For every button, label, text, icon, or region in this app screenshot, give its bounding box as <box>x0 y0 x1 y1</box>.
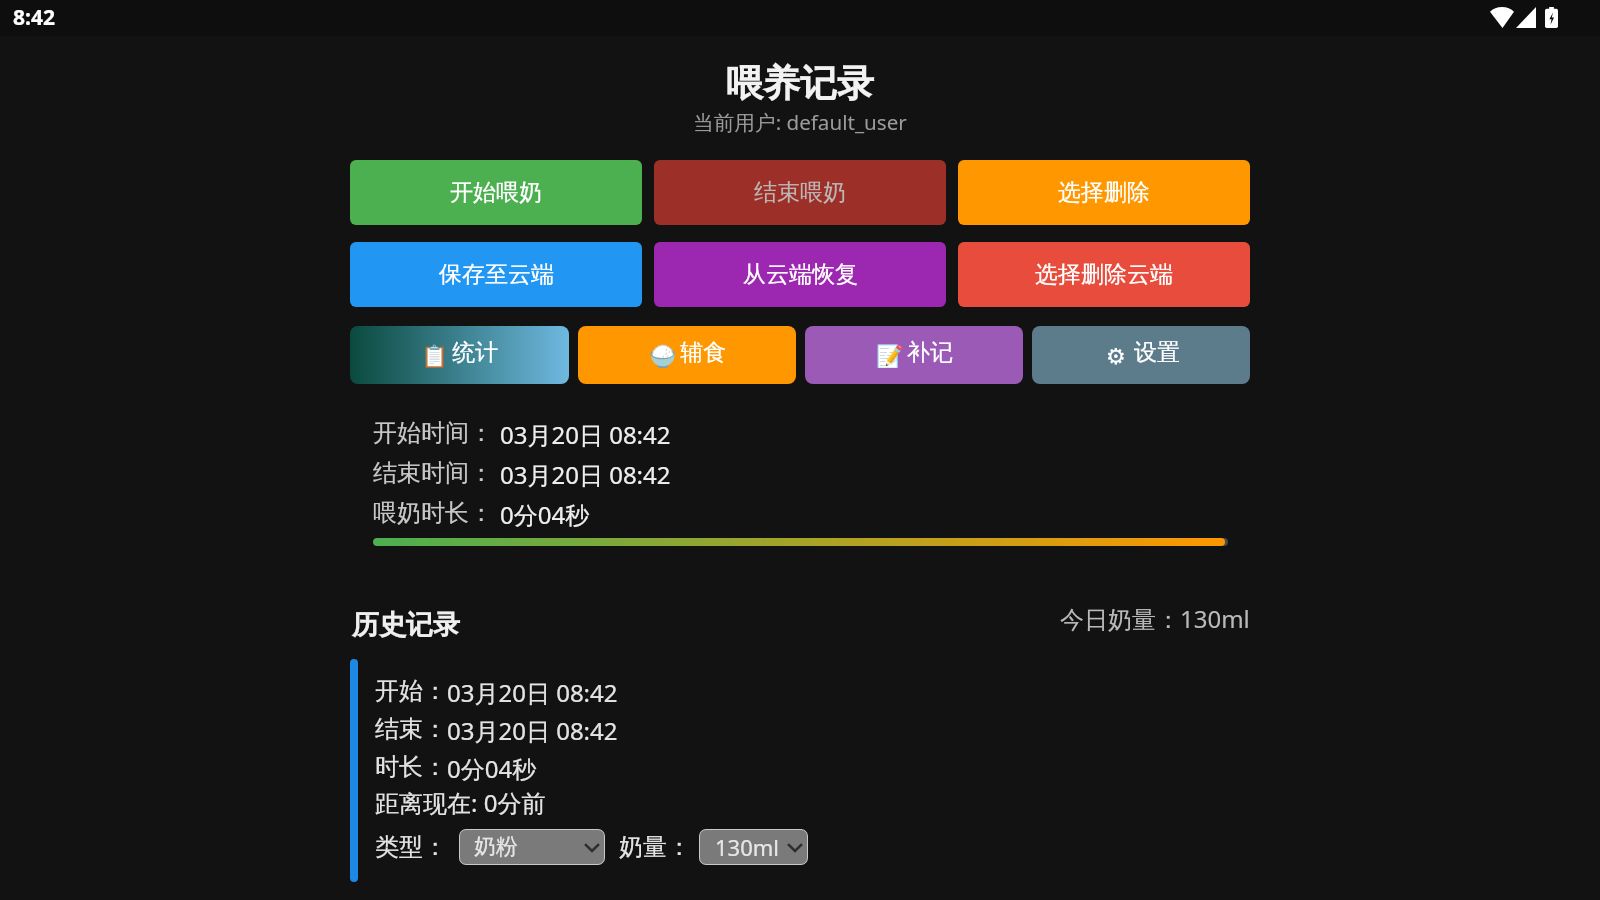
button[interactable]: 开始： <box>350 659 1250 882</box>
other: Cellular signal <box>1516 7 1536 28</box>
staticText: 时长： <box>375 752 447 782</box>
staticText: 开始喂奶 <box>450 178 542 207</box>
button[interactable]: 选择删除云端 <box>958 242 1250 307</box>
staticText: 保存至云端 <box>439 260 554 289</box>
staticText: 03月20日 08:42 <box>447 714 618 747</box>
staticText: 结束喂奶 <box>754 178 846 207</box>
staticText: 设置 <box>1134 338 1180 367</box>
staticText: 喂养记录 <box>350 60 1250 107</box>
button[interactable]: 从云端恢复 <box>654 242 946 307</box>
staticText: 结束时间： <box>373 458 493 488</box>
staticText: 📝 <box>876 344 902 368</box>
staticText: 奶量： <box>619 832 691 862</box>
staticText: 📋 <box>421 344 447 368</box>
staticText: 奶粉 <box>474 833 518 861</box>
staticText: 🍚 <box>649 344 675 368</box>
other: Battery charging <box>1545 7 1558 28</box>
staticText: 03月20日 08:42 <box>447 676 618 709</box>
button[interactable]: 📝 <box>805 326 1023 384</box>
staticText: 统计 <box>452 338 498 367</box>
staticText: 选择删除云端 <box>1035 260 1173 289</box>
button[interactable]: 📋 <box>350 326 569 384</box>
staticText: 130ml <box>715 832 779 862</box>
staticText: 历史记录 <box>352 608 460 642</box>
staticText: 开始： <box>375 676 447 706</box>
staticText: ⚙ <box>1106 344 1126 368</box>
staticText: 今日奶量：130ml <box>1060 602 1250 635</box>
staticText: 结束： <box>375 714 447 744</box>
staticText: 从云端恢复 <box>743 260 858 289</box>
other: Wi-Fi signal <box>1490 7 1514 28</box>
button[interactable]: 选择类型：奶粉 <box>459 829 605 865</box>
staticText: 03月20日 08:42 <box>500 418 671 451</box>
staticText: 0分04秒 <box>447 752 537 785</box>
staticText: 0分04秒 <box>500 498 590 531</box>
button[interactable]: 选择删除 <box>958 160 1250 225</box>
staticText: 喂奶时长： <box>373 498 493 528</box>
staticText: 辅食 <box>680 338 726 367</box>
staticText: 补记 <box>907 338 953 367</box>
button[interactable]: 保存至云端 <box>350 242 642 307</box>
staticText: 类型： <box>375 832 447 862</box>
button[interactable]: 开始喂奶 <box>350 160 642 225</box>
staticText: 当前用户: default_user <box>350 108 1250 136</box>
button[interactable]: 选择奶量：130ml <box>699 829 808 865</box>
staticText: 选择删除 <box>1058 178 1150 207</box>
button[interactable]: 🍚 <box>578 326 796 384</box>
staticText: 03月20日 08:42 <box>500 458 671 491</box>
staticText: 开始时间： <box>373 418 493 448</box>
button[interactable]: ⚙ <box>1032 326 1250 384</box>
staticText: 距离现在: 0分前 <box>375 786 546 819</box>
button[interactable]: 结束喂奶 <box>654 160 946 225</box>
staticText: 8:42 <box>13 3 55 32</box>
